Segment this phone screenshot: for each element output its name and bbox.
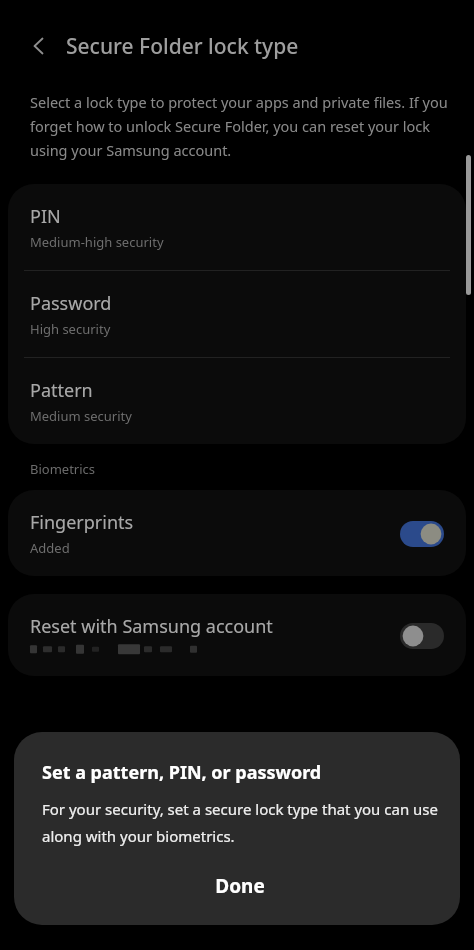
staticText: PIN [30,204,61,229]
staticText: For your security, set a secure lock typ… [42,799,438,847]
staticText: Secure Folder lock type [66,32,299,61]
staticText: Medium security [30,407,132,425]
staticText: Select a lock type to protect your apps … [30,92,452,160]
button[interactable]: Reset with Samsung account off [400,623,444,649]
staticText: Password [30,291,112,316]
staticText: High security [30,320,111,338]
staticText: Added [30,539,70,557]
staticText: Medium-high security [30,233,164,251]
staticText: Fingerprints [30,510,134,535]
staticText: Reset with Samsung account [30,614,273,639]
button[interactable]: Back [18,25,60,67]
button[interactable]: Done [42,863,438,909]
button[interactable]: Reset with Samsung account [8,594,466,676]
button[interactable]: Password [8,271,466,357]
staticText: Pattern [30,378,93,403]
button[interactable]: Pattern [8,358,466,444]
button[interactable]: Fingerprints on [400,521,444,547]
button[interactable]: PIN [8,184,466,270]
button[interactable]: Fingerprints [8,490,466,576]
staticText: Set a pattern, PIN, or password [42,760,322,785]
staticText: Biometrics [30,460,96,478]
staticText: Done [215,873,265,899]
